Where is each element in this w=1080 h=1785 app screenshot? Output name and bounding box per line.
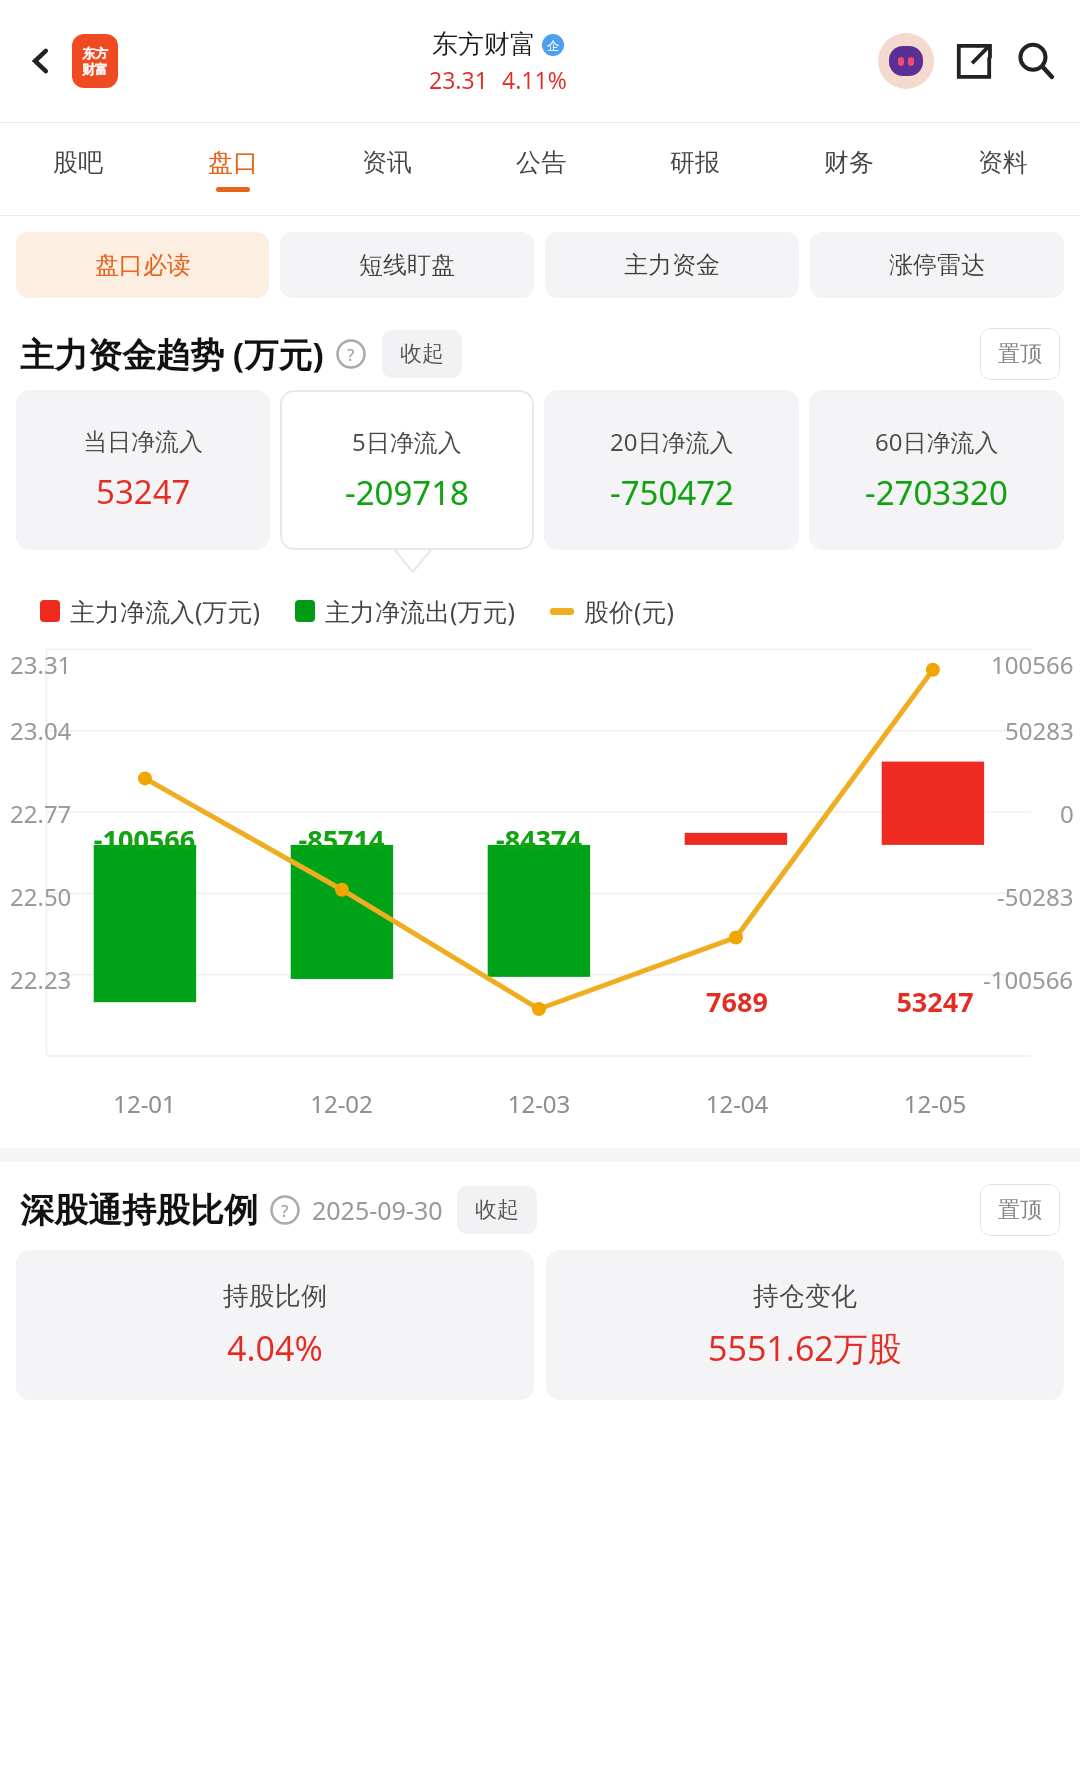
staticText: 资讯 bbox=[362, 147, 412, 178]
button[interactable]: 置顶 bbox=[980, 328, 1060, 380]
staticText: 东方 bbox=[82, 45, 108, 61]
button[interactable]: 资料 bbox=[926, 123, 1080, 215]
staticText: 53247 bbox=[96, 469, 191, 514]
staticText: 12-05 bbox=[836, 1087, 1034, 1120]
button[interactable]: 资讯 bbox=[310, 123, 464, 215]
staticText: 22.50 bbox=[10, 880, 72, 913]
button[interactable]: Share bbox=[948, 35, 1000, 87]
staticText: -50283 bbox=[997, 880, 1074, 913]
staticText: 23.04 bbox=[10, 714, 72, 747]
button[interactable]: 主力资金 bbox=[545, 232, 799, 298]
staticText: 5551.62万股 bbox=[708, 1325, 902, 1371]
staticText: 财务 bbox=[824, 147, 874, 178]
staticText: -100566 bbox=[46, 821, 243, 858]
staticText: 盘口必读 bbox=[95, 250, 191, 280]
staticText: 企 bbox=[547, 38, 559, 53]
staticText: 2025-09-30 bbox=[312, 1193, 443, 1227]
staticText: 22.23 bbox=[10, 963, 72, 996]
staticText: 50283 bbox=[1005, 714, 1074, 747]
staticText: ? bbox=[281, 1199, 289, 1222]
staticText: 7689 bbox=[638, 983, 836, 1020]
staticText: 12-04 bbox=[638, 1087, 836, 1120]
button[interactable]: 5日净流入 bbox=[280, 390, 534, 550]
staticText: 股价(元) bbox=[584, 594, 675, 628]
button[interactable]: 涨停雷达 bbox=[810, 232, 1064, 298]
button[interactable]: 股吧 bbox=[0, 123, 155, 215]
button[interactable]: 研报 bbox=[618, 123, 772, 215]
staticText: 东方财富 bbox=[432, 28, 536, 61]
staticText: ? bbox=[347, 343, 355, 366]
button[interactable]: Search bbox=[1010, 35, 1062, 87]
staticText: 主力资金 bbox=[624, 250, 720, 280]
staticText: 12-03 bbox=[440, 1087, 638, 1120]
staticText: 公告 bbox=[516, 147, 566, 178]
staticText: 当日净流入 bbox=[83, 427, 203, 457]
button[interactable]: East Money logo bbox=[72, 34, 118, 88]
button[interactable]: 财务 bbox=[772, 123, 926, 215]
button[interactable]: 60日净流入 bbox=[809, 390, 1064, 550]
staticText: 23.31 bbox=[429, 64, 488, 95]
staticText: 研报 bbox=[670, 147, 720, 178]
staticText: 置顶 bbox=[998, 340, 1042, 368]
staticText: 短线盯盘 bbox=[359, 250, 455, 280]
button[interactable]: Assistant bbox=[878, 33, 934, 89]
staticText: 22.77 bbox=[10, 797, 72, 830]
button[interactable]: 持股比例 bbox=[16, 1250, 534, 1400]
button[interactable]: 置顶 bbox=[980, 1184, 1060, 1236]
staticText: 4.11% bbox=[502, 64, 567, 95]
staticText: -750472 bbox=[610, 470, 734, 515]
staticText: 收起 bbox=[475, 1196, 519, 1224]
button[interactable]: 持仓变化 bbox=[546, 1250, 1064, 1400]
button[interactable]: 短线盯盘 bbox=[280, 232, 534, 298]
staticText: 53247 bbox=[836, 983, 1034, 1020]
staticText: 60日净流入 bbox=[875, 425, 999, 458]
staticText: 100566 bbox=[991, 648, 1074, 681]
staticText: 收起 bbox=[400, 340, 444, 368]
button[interactable]: 公告 bbox=[464, 123, 618, 215]
staticText: 持仓变化 bbox=[753, 1280, 857, 1313]
button[interactable]: 收起 bbox=[382, 330, 462, 378]
staticText: 主力净流入(万元) bbox=[70, 594, 261, 628]
staticText: 涨停雷达 bbox=[889, 250, 985, 280]
staticText: -2703320 bbox=[865, 470, 1008, 515]
staticText: -100566 bbox=[983, 963, 1074, 996]
staticText: 深股通持股比例 bbox=[20, 1189, 258, 1232]
staticText: 盘口 bbox=[208, 147, 258, 178]
button[interactable]: 收起 bbox=[457, 1186, 537, 1234]
staticText: 0 bbox=[1060, 797, 1074, 830]
button[interactable]: 盘口必读 bbox=[16, 232, 269, 298]
staticText: 20日净流入 bbox=[610, 425, 734, 458]
staticText: 主力净流出(万元) bbox=[325, 594, 516, 628]
button[interactable]: 20日净流入 bbox=[544, 390, 799, 550]
staticText: 股吧 bbox=[53, 147, 103, 178]
staticText: -85714 bbox=[243, 821, 440, 858]
staticText: 5日净流入 bbox=[352, 425, 462, 458]
staticText: 23.31 bbox=[10, 648, 72, 681]
staticText: -209718 bbox=[345, 470, 469, 515]
staticText: 4.04% bbox=[227, 1325, 323, 1371]
button[interactable]: 当日净流入 bbox=[16, 390, 270, 550]
staticText: 12-02 bbox=[243, 1087, 440, 1120]
staticText: 主力资金趋势 (万元) bbox=[20, 331, 324, 377]
staticText: 资料 bbox=[978, 147, 1028, 178]
staticText: 置顶 bbox=[998, 1196, 1042, 1224]
staticText: 持股比例 bbox=[223, 1280, 327, 1313]
staticText: -84374 bbox=[440, 821, 638, 858]
button[interactable]: 盘口 bbox=[155, 123, 310, 215]
staticText: 财富 bbox=[82, 61, 108, 77]
button[interactable]: Back bbox=[18, 38, 64, 84]
staticText: 12-01 bbox=[46, 1087, 243, 1120]
